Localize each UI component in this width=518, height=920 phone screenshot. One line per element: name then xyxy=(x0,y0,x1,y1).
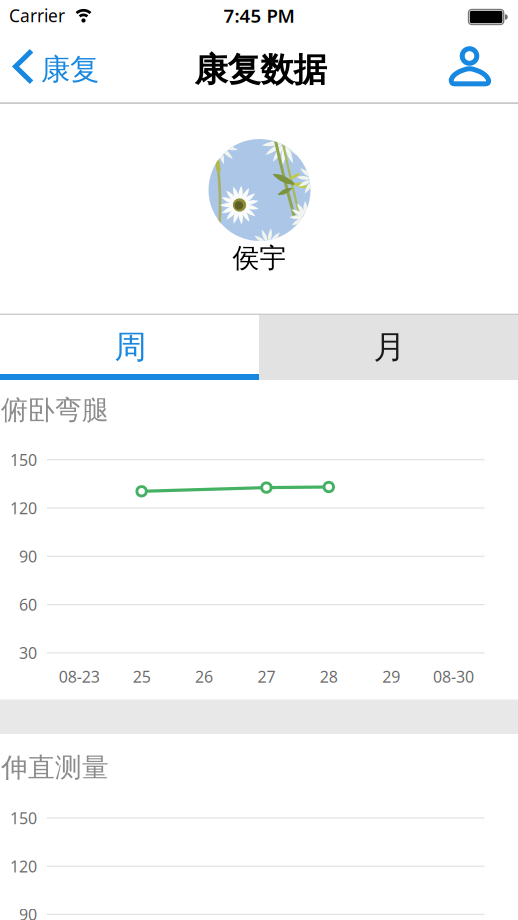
button[interactable]: 月 xyxy=(259,315,518,380)
staticText: 90 xyxy=(19,904,37,920)
staticText: 康复数据 xyxy=(194,49,326,90)
staticText: 27 xyxy=(257,666,275,687)
staticText: 7:45 PM xyxy=(223,3,294,28)
staticText: 30 xyxy=(19,642,37,663)
button[interactable]: 康复 xyxy=(11,44,103,89)
staticText: 周 xyxy=(114,327,146,367)
staticText: 120 xyxy=(10,497,37,519)
staticText: 26 xyxy=(195,666,213,687)
staticText: 月 xyxy=(373,327,405,367)
staticText: 侯宇 xyxy=(232,242,286,274)
staticText: 60 xyxy=(19,594,37,615)
staticText: 150 xyxy=(10,449,37,470)
button[interactable]: 联系人 xyxy=(447,43,493,89)
staticText: 伸直测量 xyxy=(1,751,109,784)
staticText: 120 xyxy=(10,856,37,877)
staticText: 08-23 xyxy=(59,666,100,687)
staticText: 08-30 xyxy=(433,666,474,687)
staticText: 俯卧弯腿 xyxy=(1,394,109,426)
staticText: 90 xyxy=(19,546,37,567)
staticText: 28 xyxy=(320,666,338,687)
staticText: 康复 xyxy=(41,51,99,87)
button[interactable]: 周 xyxy=(0,315,259,380)
staticText: 150 xyxy=(10,807,37,829)
staticText: 29 xyxy=(382,666,400,687)
staticText: Carrier xyxy=(9,4,65,27)
staticText: 25 xyxy=(133,666,151,687)
